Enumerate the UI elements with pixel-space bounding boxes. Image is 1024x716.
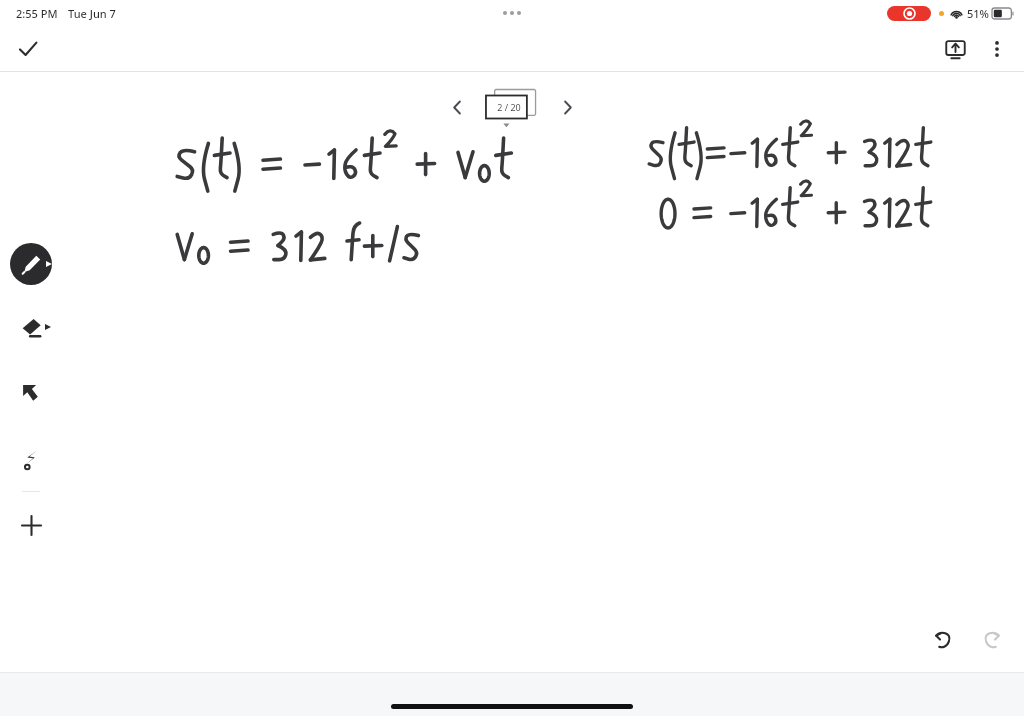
button[interactable]: Next page xyxy=(547,81,587,133)
button[interactable]: Present xyxy=(934,28,976,70)
button[interactable]: Done xyxy=(8,29,48,69)
button[interactable]: Page 2 of 20 xyxy=(481,84,543,130)
button[interactable]: More options xyxy=(976,28,1018,70)
staticText: 2 / 20 xyxy=(497,101,521,113)
button[interactable]: Add xyxy=(12,508,50,543)
staticText: Tue Jun 7 xyxy=(68,6,116,21)
staticText: 51% xyxy=(967,6,989,21)
button[interactable]: Undo xyxy=(920,616,967,664)
button[interactable]: Select tool xyxy=(11,373,51,413)
button[interactable]: Lasso tool xyxy=(11,439,51,479)
button[interactable]: Previous page xyxy=(437,81,477,133)
button[interactable]: Eraser tool xyxy=(11,307,51,347)
button[interactable]: Pen tool xyxy=(10,243,52,285)
staticText: 2:55 PM xyxy=(16,6,58,21)
button[interactable]: Redo xyxy=(967,616,1014,664)
